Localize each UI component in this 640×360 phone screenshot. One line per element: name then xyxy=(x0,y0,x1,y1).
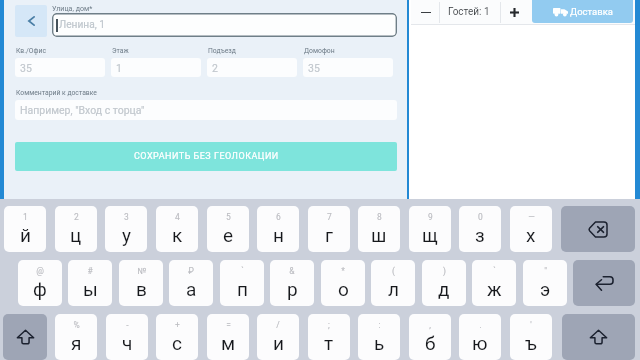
staticText: — xyxy=(528,212,535,222)
button[interactable]: 2 xyxy=(55,206,97,252)
staticText: ` xyxy=(493,266,496,276)
button[interactable]: / xyxy=(257,314,299,360)
staticText: 5 xyxy=(226,212,231,222)
button[interactable]: Decrease guests xyxy=(411,0,440,24)
button[interactable]: ` xyxy=(472,260,516,306)
button[interactable]: 1 xyxy=(111,58,201,77)
button[interactable]: = xyxy=(207,314,249,360)
button[interactable]: 5 xyxy=(207,206,249,252)
button[interactable]: СОХРАНИТЬ БЕЗ ГЕОЛОКАЦИИ xyxy=(15,142,397,171)
staticText: з xyxy=(475,224,485,246)
button[interactable]: ₽ xyxy=(169,260,213,306)
staticText: ь xyxy=(374,332,385,354)
staticText: ж xyxy=(487,278,502,300)
staticText: 1 xyxy=(23,212,28,222)
button[interactable]: Back xyxy=(15,5,47,37)
staticText: 8 xyxy=(377,212,382,222)
button[interactable]: Доставка xyxy=(532,0,633,23)
button[interactable]: % xyxy=(55,314,97,360)
button[interactable]: 2 xyxy=(207,58,297,77)
staticText: Этаж xyxy=(112,47,129,55)
staticText: # xyxy=(87,266,93,276)
staticText: % xyxy=(73,320,80,330)
button[interactable]: ( xyxy=(371,260,415,306)
button[interactable]: 4 xyxy=(156,206,198,252)
staticText: , xyxy=(429,320,431,330)
staticText: Например, "Вход с торца" xyxy=(20,104,145,116)
button[interactable]: , xyxy=(409,314,451,360)
button[interactable]: @ xyxy=(18,260,62,306)
staticText: ч xyxy=(122,332,133,354)
button[interactable]: Backspace xyxy=(561,206,635,252)
button[interactable]: ' xyxy=(510,314,552,360)
button[interactable]: — xyxy=(510,206,552,252)
staticText: 4 xyxy=(175,212,180,222)
staticText: щ xyxy=(422,224,438,246)
staticText: м xyxy=(221,332,236,354)
staticText: СОХРАНИТЬ БЕЗ ГЕОЛОКАЦИИ xyxy=(134,151,279,162)
staticText: 7 xyxy=(327,212,332,222)
button[interactable]: ; xyxy=(308,314,350,360)
staticText: Гостей: 1 xyxy=(448,6,490,18)
button[interactable]: Shift xyxy=(3,314,47,360)
staticText: 1 xyxy=(116,62,122,74)
button[interactable]: # xyxy=(68,260,112,306)
staticText: е xyxy=(223,224,234,246)
button[interactable]: Increase guests xyxy=(500,0,529,24)
button[interactable]: Shift xyxy=(562,314,635,360)
staticText: ы xyxy=(83,278,98,300)
button[interactable]: Например, "Вход с торца" xyxy=(15,100,397,120)
button[interactable]: " xyxy=(523,260,567,306)
button[interactable]: 1 xyxy=(4,206,46,252)
staticText: Кв./Офис xyxy=(16,47,46,55)
staticText: х xyxy=(526,224,536,246)
button[interactable]: 8 xyxy=(358,206,400,252)
staticText: 35 xyxy=(308,62,320,74)
staticText: п xyxy=(237,278,248,300)
staticText: & xyxy=(289,266,295,276)
staticText: ф xyxy=(33,278,47,300)
button[interactable]: 3 xyxy=(105,206,147,252)
staticText: = xyxy=(226,320,231,330)
staticText: " xyxy=(544,266,547,276)
button[interactable]: - xyxy=(106,314,148,360)
button[interactable]: 0 xyxy=(459,206,501,252)
button[interactable]: * xyxy=(321,260,365,306)
staticText: о xyxy=(338,278,349,300)
staticText: . xyxy=(479,320,482,330)
button[interactable]: 35 xyxy=(303,58,393,77)
staticText: ; xyxy=(328,320,330,330)
staticText: 0 xyxy=(478,212,483,222)
staticText: я xyxy=(71,332,82,354)
staticText: с xyxy=(172,332,182,354)
staticText: / xyxy=(276,320,280,330)
staticText: т xyxy=(324,332,334,354)
button[interactable]: Enter xyxy=(573,260,635,306)
button[interactable]: ` xyxy=(220,260,264,306)
button[interactable]: 7 xyxy=(308,206,350,252)
staticText: Подъезд xyxy=(208,47,236,55)
staticText: р xyxy=(287,278,298,300)
staticText: Улица, дом* xyxy=(52,4,93,12)
button[interactable]: Ленина, 1 xyxy=(52,13,397,37)
button[interactable]: Гостей: 1 xyxy=(439,0,499,24)
staticText: 2 xyxy=(74,212,79,222)
staticText: у xyxy=(122,224,131,246)
staticText: й xyxy=(20,224,31,246)
staticText: б xyxy=(425,332,436,354)
button[interactable]: + xyxy=(156,314,198,360)
staticText: ₽ xyxy=(188,266,194,276)
button[interactable]: ) xyxy=(422,260,466,306)
button[interactable]: 6 xyxy=(257,206,299,252)
button[interactable]: . xyxy=(459,314,501,360)
button[interactable]: & xyxy=(270,260,314,306)
staticText: Доставка xyxy=(570,6,613,17)
staticText: и xyxy=(273,332,284,354)
button[interactable]: : xyxy=(358,314,400,360)
button[interactable]: 9 xyxy=(409,206,451,252)
staticText: л xyxy=(388,278,399,300)
button[interactable]: 35 xyxy=(15,58,105,77)
button[interactable]: № xyxy=(119,260,163,306)
staticText: № xyxy=(137,266,146,276)
staticText: - xyxy=(126,320,129,330)
